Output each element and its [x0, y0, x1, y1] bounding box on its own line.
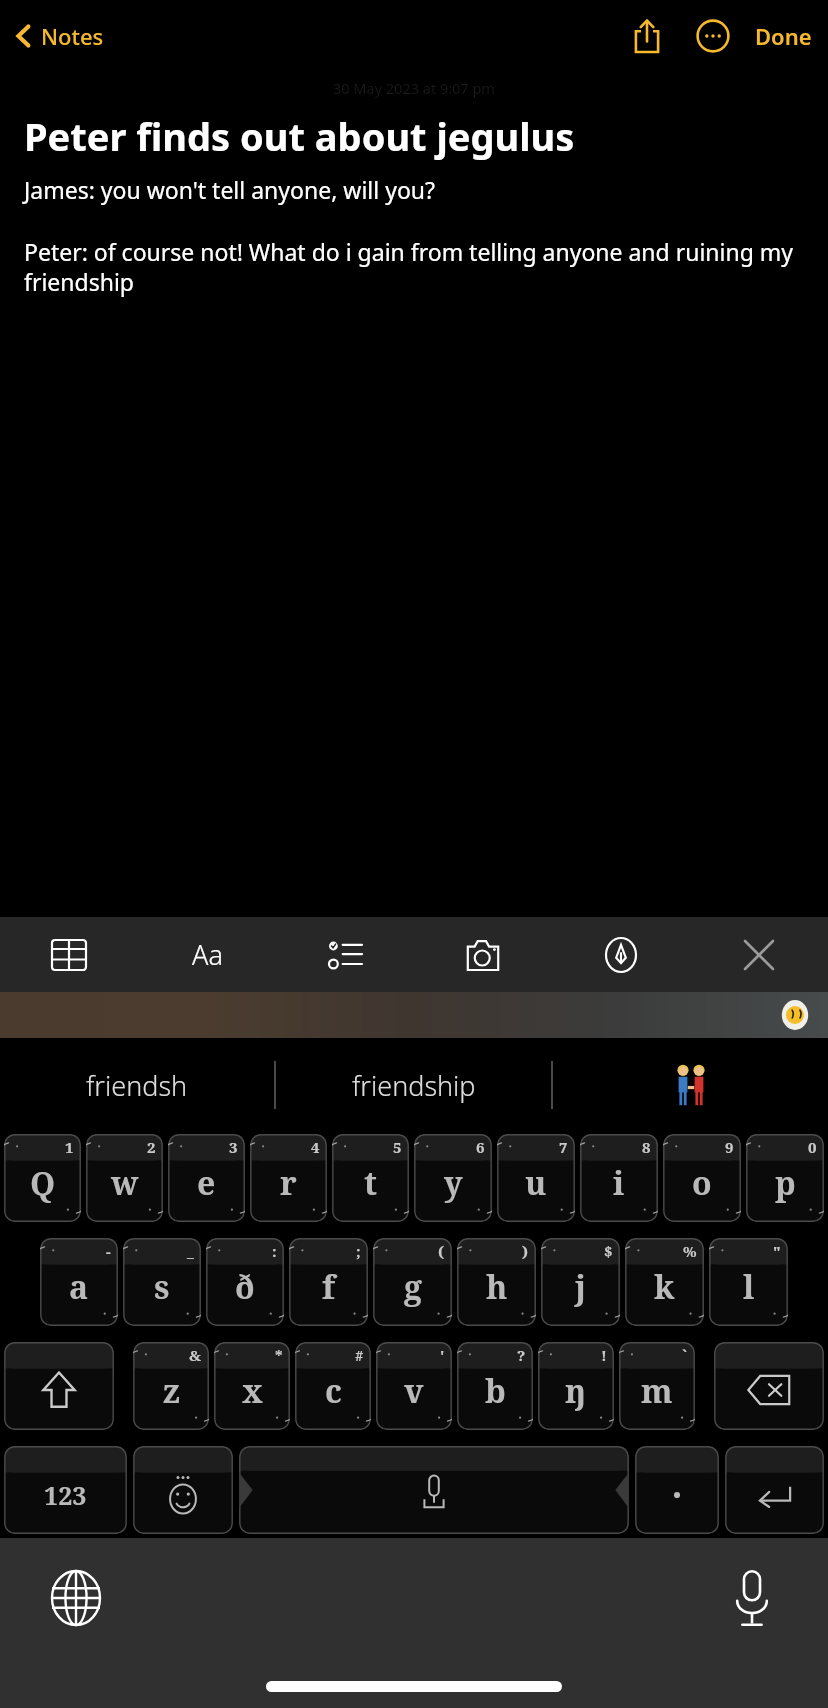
button[interactable]: z	[133, 1342, 209, 1430]
button[interactable]: u	[497, 1134, 575, 1222]
button[interactable]: Sticker	[780, 1000, 810, 1030]
button[interactable]: friendsh	[0, 1038, 274, 1132]
staticText: g	[404, 1265, 422, 1309]
staticText: o	[692, 1161, 712, 1205]
button[interactable]: Checklist	[276, 917, 414, 992]
button[interactable]: r	[250, 1134, 327, 1222]
button[interactable]: e	[168, 1134, 245, 1222]
staticText: y	[444, 1161, 463, 1205]
staticText: 8	[642, 1137, 651, 1157]
staticText: *	[275, 1345, 283, 1365]
staticText: e	[197, 1161, 216, 1205]
staticText: z	[163, 1369, 180, 1413]
button[interactable]: Close	[690, 917, 828, 992]
button[interactable]: Period	[635, 1446, 719, 1534]
button[interactable]: k	[625, 1238, 704, 1326]
staticText: 9	[725, 1137, 734, 1157]
button[interactable]: j	[541, 1238, 620, 1326]
button[interactable]: Voice input	[720, 1566, 784, 1630]
staticText: friendsh	[86, 1067, 188, 1104]
button[interactable]: t	[332, 1134, 409, 1222]
button[interactable]: Space	[239, 1446, 629, 1534]
staticText: 4	[311, 1137, 320, 1157]
button[interactable]: b	[457, 1342, 533, 1430]
staticText: c	[325, 1369, 342, 1413]
button[interactable]: v	[376, 1342, 452, 1430]
staticText: 30 May 2023 at 9:07 pm	[333, 78, 495, 98]
button[interactable]: Return	[725, 1446, 824, 1534]
button[interactable]: Markup	[552, 917, 690, 992]
button[interactable]: p	[746, 1134, 824, 1222]
staticText: m	[641, 1369, 673, 1413]
button[interactable]: c	[295, 1342, 371, 1430]
staticText: k	[654, 1265, 675, 1309]
staticText: `	[682, 1345, 688, 1365]
button[interactable]: friendship	[276, 1038, 551, 1132]
staticText: !	[601, 1345, 607, 1365]
button[interactable]: Change keyboard	[44, 1566, 108, 1630]
button[interactable]: Table	[0, 917, 138, 992]
staticText: Peter finds out about jegulus	[24, 110, 575, 162]
staticText: l	[743, 1265, 755, 1309]
button[interactable]: m	[619, 1342, 695, 1430]
button[interactable]: x	[214, 1342, 290, 1430]
button[interactable]: ŋ	[538, 1342, 614, 1430]
button[interactable]: Format text	[138, 917, 276, 992]
staticText: 123	[44, 1478, 87, 1512]
staticText: James: you won't tell anyone, will you?	[24, 174, 436, 205]
staticText: w	[111, 1161, 139, 1205]
button[interactable]: Notes	[10, 15, 108, 57]
staticText: 2	[147, 1137, 156, 1157]
staticText: h	[486, 1265, 508, 1309]
staticText: t	[364, 1161, 377, 1205]
button[interactable]: Two people holding hands emoji	[553, 1038, 828, 1132]
button[interactable]: Emoji	[133, 1446, 233, 1534]
button[interactable]: g	[373, 1238, 452, 1326]
staticText: ?	[517, 1345, 526, 1365]
staticText: s	[154, 1265, 170, 1309]
staticText: p	[775, 1161, 796, 1205]
staticText: j	[575, 1265, 587, 1309]
button[interactable]: h	[457, 1238, 536, 1326]
staticText: friendship	[352, 1067, 476, 1104]
staticText: a	[69, 1265, 89, 1309]
button[interactable]: w	[86, 1134, 163, 1222]
staticText: 3	[229, 1137, 238, 1157]
button[interactable]: a	[40, 1238, 118, 1326]
button[interactable]: o	[663, 1134, 741, 1222]
staticText: 0	[808, 1137, 817, 1157]
staticText: ð	[235, 1265, 255, 1309]
staticText: ;	[356, 1241, 361, 1261]
button[interactable]: Shift	[4, 1342, 114, 1430]
button[interactable]: f	[289, 1238, 368, 1326]
staticText: u	[525, 1161, 547, 1205]
button[interactable]: y	[414, 1134, 492, 1222]
button[interactable]: i	[580, 1134, 658, 1222]
staticText: v	[404, 1369, 424, 1413]
button[interactable]: Q	[4, 1134, 81, 1222]
staticText: i	[613, 1161, 625, 1205]
staticText: )	[522, 1241, 529, 1261]
staticText: Aa	[192, 936, 223, 973]
button[interactable]: s	[123, 1238, 201, 1326]
staticText: &	[189, 1345, 202, 1365]
staticText: Notes	[41, 21, 104, 51]
staticText: 6	[476, 1137, 485, 1157]
button[interactable]: Done	[749, 15, 818, 57]
staticText: 7	[559, 1137, 568, 1157]
staticText: '	[440, 1345, 445, 1365]
button[interactable]: Numbers	[4, 1446, 127, 1534]
staticText: (	[438, 1241, 445, 1261]
button[interactable]: Backspace	[714, 1342, 824, 1430]
button[interactable]: l	[709, 1238, 788, 1326]
staticText: $	[604, 1241, 613, 1261]
staticText: %	[683, 1241, 697, 1261]
staticText: ŋ	[565, 1369, 587, 1413]
staticText: r	[280, 1161, 297, 1205]
staticText: Done	[755, 21, 812, 51]
button[interactable]: Share	[621, 10, 673, 62]
staticText: Q	[30, 1161, 56, 1205]
button[interactable]: More options	[687, 10, 739, 62]
button[interactable]: ð	[206, 1238, 284, 1326]
button[interactable]: Camera	[414, 917, 552, 992]
